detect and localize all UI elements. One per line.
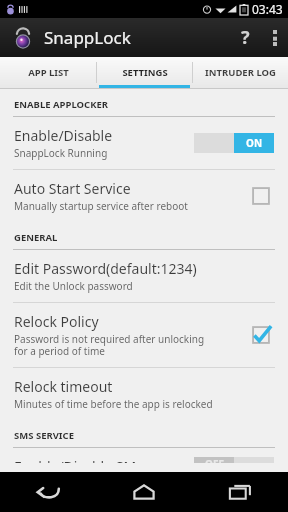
staticText: Manually startup service after reboot xyxy=(14,199,188,213)
staticText: Enable/Disable xyxy=(14,126,113,145)
staticText: Edit the Unlock password xyxy=(14,279,133,293)
staticText: ON xyxy=(246,136,263,150)
staticText: SnappLock xyxy=(44,26,131,49)
button[interactable]: Unchecked xyxy=(248,183,274,209)
button[interactable]: Toggle off xyxy=(194,457,274,463)
staticText: APP LIST xyxy=(28,66,69,79)
button[interactable]: Relock Policy xyxy=(0,303,288,367)
staticText: Password is not required after unlocking… xyxy=(14,332,205,358)
button[interactable]: Checked xyxy=(248,322,274,348)
button[interactable]: More options xyxy=(262,18,288,57)
staticText: Enable/Disable SM.. xyxy=(14,457,144,463)
staticText: OFF xyxy=(205,457,224,463)
button[interactable]: Auto Start Service xyxy=(0,170,288,222)
staticText: Relock timeout xyxy=(14,377,113,396)
staticText: 03:43 xyxy=(252,1,283,17)
button[interactable]: Home xyxy=(96,472,192,512)
button[interactable]: Help xyxy=(228,18,262,57)
button[interactable]: Enable/Disable SM.. xyxy=(0,448,288,472)
staticText: Auto Start Service xyxy=(14,179,131,198)
staticText: ? xyxy=(241,25,250,50)
button[interactable]: Recent apps xyxy=(192,472,288,512)
button[interactable]: Edit Password(default:1234) xyxy=(0,250,288,302)
staticText: Edit Password(default:1234) xyxy=(14,259,197,278)
button[interactable]: Toggle on xyxy=(194,133,274,153)
button[interactable]: Relock timeout xyxy=(0,368,288,420)
staticText: SnappLock Running xyxy=(14,146,108,160)
staticText: Minutes of time before the app is relock… xyxy=(14,397,213,411)
staticText: SMS SERVICE xyxy=(14,429,74,442)
button[interactable]: INTRUDER LOG xyxy=(193,57,288,88)
staticText: SETTINGS xyxy=(122,66,168,79)
button[interactable]: SETTINGS xyxy=(97,57,192,88)
button[interactable]: Enable/Disable xyxy=(0,117,288,169)
staticText: ENABLE APPLOCKER xyxy=(14,98,109,111)
staticText: Relock Policy xyxy=(14,312,99,331)
staticText: GENERAL xyxy=(14,231,58,244)
button[interactable]: Back xyxy=(0,472,96,512)
staticText: INTRUDER LOG xyxy=(205,66,276,79)
button[interactable]: APP LIST xyxy=(0,57,96,88)
